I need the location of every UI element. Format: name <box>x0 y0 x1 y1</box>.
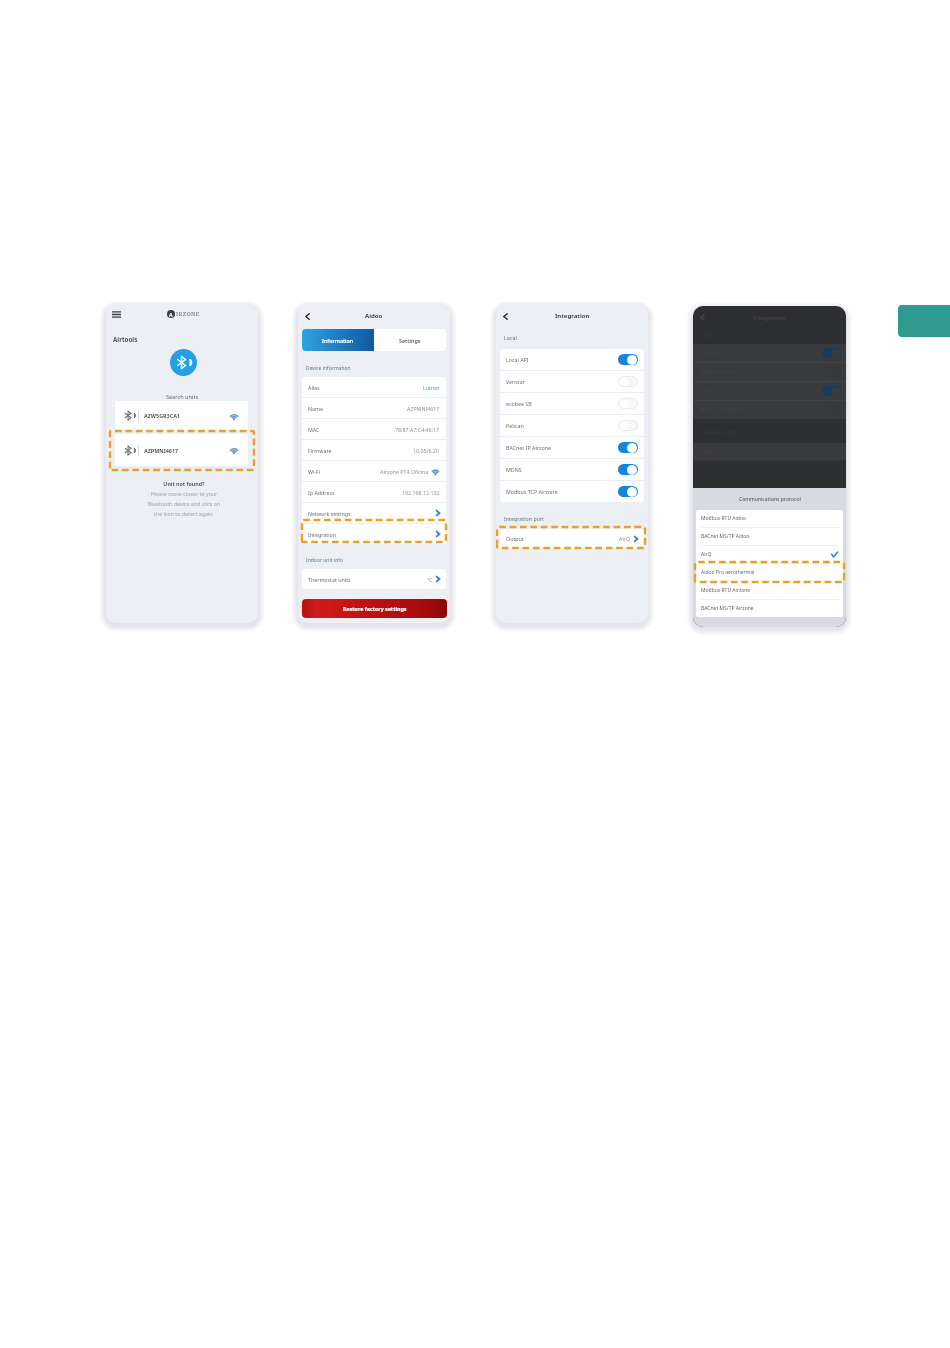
staticText: Ip Address <box>308 489 335 496</box>
button[interactable]: Modbus RTU Aidoo <box>696 510 843 527</box>
button[interactable]: Back <box>304 313 311 320</box>
button[interactable]: Search bluetooth units <box>170 349 197 376</box>
staticText: 10.05/6.20 <box>413 447 440 454</box>
staticText: BACnet MS/TP Airzone <box>701 605 754 612</box>
button[interactable]: Name <box>302 398 446 418</box>
staticText: Modbus RTU Aidoo <box>701 515 746 522</box>
staticText: Device information <box>306 365 351 372</box>
button[interactable]: Local API <box>500 349 644 370</box>
staticText: 192.168.12.132 <box>402 489 440 496</box>
staticText: °C <box>427 576 433 583</box>
staticText: Integration <box>555 312 590 320</box>
button[interactable]: Restore factory settings <box>302 599 447 618</box>
staticText: Integration port <box>504 515 544 522</box>
button[interactable]: ecobee SB <box>500 393 644 414</box>
button[interactable]: Aidoo Pro aerothermal <box>696 564 843 581</box>
button[interactable]: WDSS <box>693 382 846 400</box>
staticText: AZW5GR3CA1 <box>144 412 180 419</box>
staticText: AZPMNI4617 <box>407 405 440 412</box>
staticText: MAC <box>308 426 320 433</box>
staticText: Information <box>322 337 354 344</box>
button[interactable]: Firmware <box>302 440 446 460</box>
button[interactable]: AZW5GR3CA1 <box>115 401 248 430</box>
button[interactable]: Alias <box>302 377 446 397</box>
staticText: Unit not found? <box>108 480 258 487</box>
staticText: Integration <box>753 314 786 322</box>
staticText: MDNS <box>506 466 522 473</box>
button[interactable]: AirQ <box>696 546 843 563</box>
staticText: Name <box>308 405 323 412</box>
staticText: Wi-Fi <box>308 468 321 475</box>
staticText: Local API <box>506 356 529 363</box>
button[interactable]: Pelican <box>500 415 644 436</box>
staticText: Firmware <box>308 447 332 454</box>
button[interactable]: Back <box>502 313 509 320</box>
staticText: Modbus TCP Airzone <box>506 488 558 495</box>
staticText: Local <box>504 334 517 341</box>
button[interactable]: Ip Address <box>302 482 446 502</box>
button[interactable]: BACnet MS/TP Airzone <box>696 600 843 617</box>
button[interactable]: BACnet IP Airzone <box>500 437 644 458</box>
button[interactable]: Modbus RTU Airzone <box>696 582 843 599</box>
staticText: BACnet IP Airzone <box>506 444 551 451</box>
button[interactable]: Information <box>302 329 374 351</box>
button[interactable]: Menu <box>112 311 121 318</box>
button[interactable]: Network settings <box>302 503 446 523</box>
staticText: Please move closer to your Bluetooth dev… <box>108 490 258 518</box>
button[interactable]: Thermostat units <box>302 569 446 589</box>
button[interactable]: Settings <box>374 329 446 351</box>
staticText: BACnet MS/TP Aidoo <box>701 533 750 540</box>
button[interactable]: AZPMNI4617 <box>115 434 248 466</box>
staticText: Output <box>506 535 524 542</box>
staticText: Communications protocol <box>739 496 801 503</box>
button[interactable]: MAC <box>302 419 446 439</box>
staticText: AirQ <box>701 551 712 558</box>
button[interactable]: Modbus TCP Airzone <box>500 481 644 502</box>
staticText: Airtools <box>113 335 138 343</box>
button[interactable]: Back <box>699 314 706 321</box>
button[interactable]: Output <box>500 529 644 548</box>
staticText: Pelican <box>506 422 524 429</box>
staticText: 78:87:A7:C4:46:17 <box>395 426 440 433</box>
staticText: Aidoo Pro aerothermal <box>701 569 755 576</box>
button[interactable]: MDNS <box>500 459 644 480</box>
staticText: Indoor unit info <box>306 557 343 564</box>
button[interactable]: Venstar <box>500 371 644 392</box>
button[interactable]: BACnet MS/TP Aidoo <box>696 528 843 545</box>
staticText: A <box>169 311 173 318</box>
staticText: AirQ <box>619 535 631 542</box>
staticText: Modbus RTU Airzone <box>701 587 751 594</box>
staticText: IRZONE <box>176 310 200 318</box>
staticText: Alias <box>308 384 320 391</box>
staticText: Settings <box>399 337 421 344</box>
staticText: Search units <box>106 393 258 401</box>
staticText: Thermostat units <box>308 576 351 583</box>
button[interactable]: Wi-Fi <box>302 461 446 481</box>
button[interactable]: Local API <box>693 344 846 362</box>
button[interactable]: Integration <box>302 524 446 544</box>
staticText: Lutron <box>423 384 440 391</box>
staticText: Venstar <box>506 378 525 385</box>
staticText: Aidoo <box>365 312 383 320</box>
staticText: Airzone PT4 Oficina <box>380 468 429 475</box>
staticText: Integration <box>308 531 337 538</box>
staticText: Network settings <box>308 510 351 517</box>
staticText: ecobee SB <box>506 400 532 407</box>
staticText: AZPMNI4617 <box>144 447 179 454</box>
staticText: Restore factory settings <box>343 605 407 612</box>
